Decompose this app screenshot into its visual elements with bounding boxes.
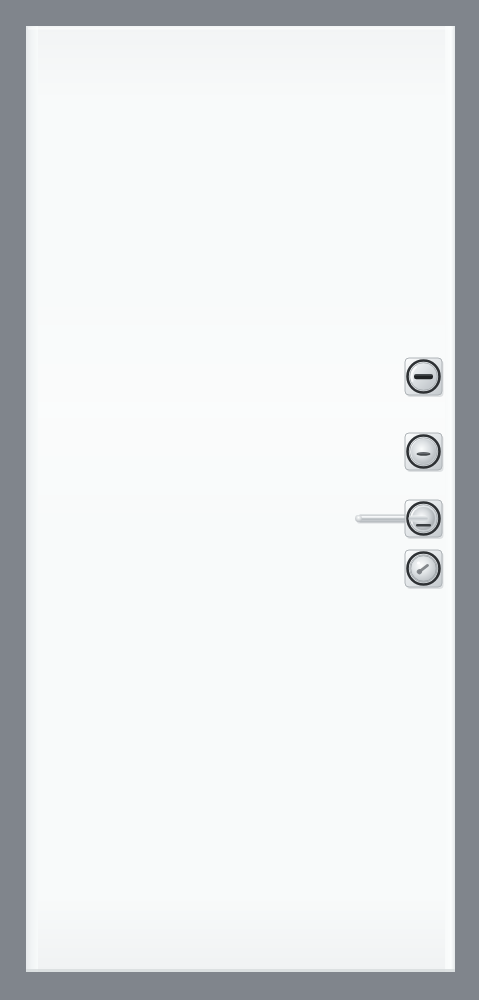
button[interactable]: Deadbolt turn xyxy=(405,433,442,470)
button[interactable]: Door handle xyxy=(356,500,442,538)
button[interactable]: Key lock cylinder xyxy=(405,550,442,587)
button[interactable]: Upper knob xyxy=(405,358,442,395)
